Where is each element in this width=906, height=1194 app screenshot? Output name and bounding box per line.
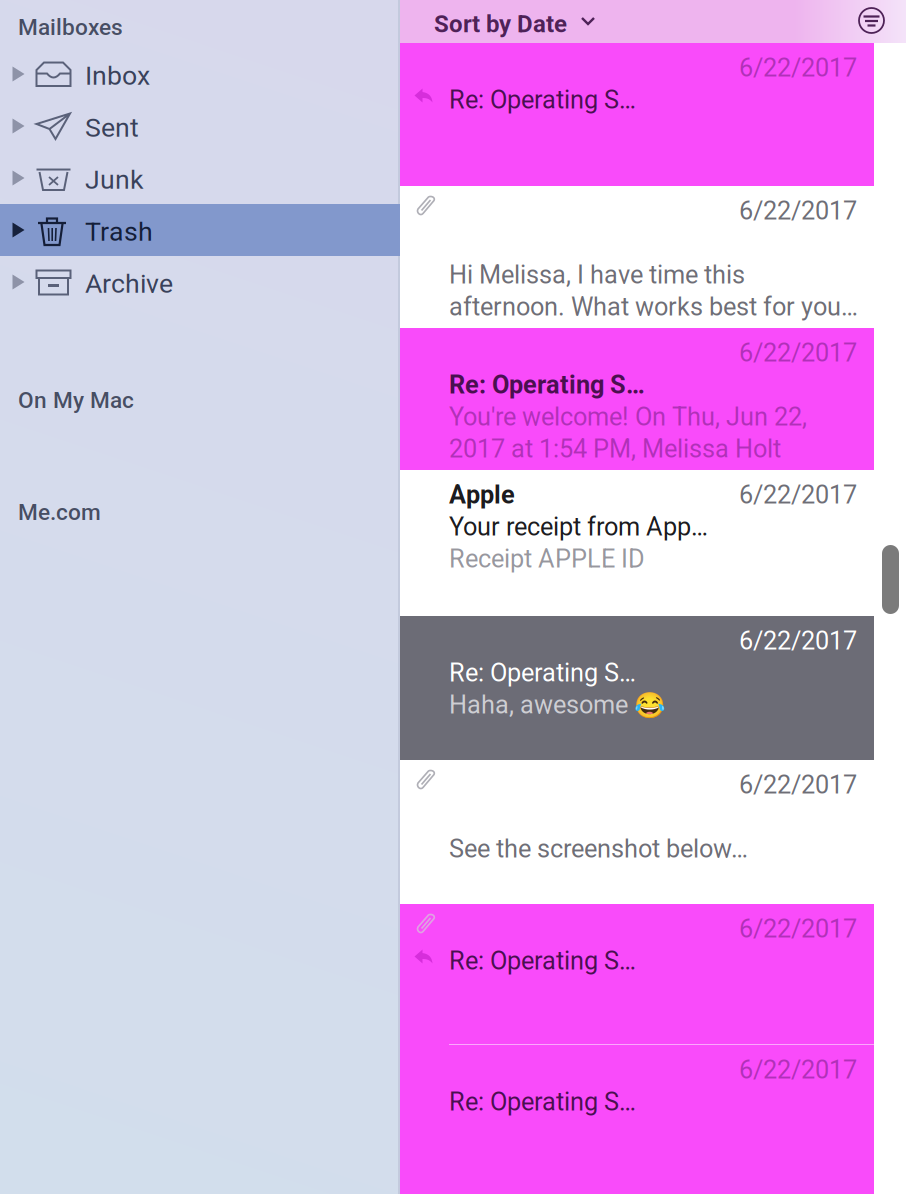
staticText: 6/22/2017 (739, 53, 857, 83)
staticText: Re: Operating S… (449, 370, 645, 400)
button[interactable]: Sort by Date (400, 0, 906, 43)
staticText: 6/22/2017 (739, 914, 857, 944)
button[interactable]: 6/22/2017 (400, 43, 874, 186)
staticText: 6/22/2017 (739, 626, 857, 656)
staticText: afternoon. What works best for you… (449, 292, 858, 322)
button[interactable]: 6/22/2017 (400, 470, 874, 616)
staticText: 6/22/2017 (739, 480, 857, 510)
button[interactable]: Archive (0, 256, 400, 308)
staticText: Sent (85, 112, 139, 143)
button[interactable]: Trash (0, 204, 400, 256)
button[interactable]: 6/22/2017 (400, 616, 874, 760)
staticText: Me.com (18, 499, 101, 526)
staticText: 2017 at 1:54 PM, Melissa Holt (449, 434, 781, 464)
button[interactable]: Inbox (0, 48, 400, 100)
button[interactable]: 6/22/2017 (400, 1045, 874, 1194)
button[interactable]: 6/22/2017 (400, 186, 874, 328)
button[interactable]: Junk (0, 152, 400, 204)
button[interactable]: 6/22/2017 (400, 904, 874, 1045)
staticText: Trash (85, 216, 153, 247)
staticText: Re: Operating S… (449, 85, 636, 115)
staticText: Re: Operating S… (449, 658, 636, 688)
staticText: Archive (85, 268, 173, 299)
staticText: 6/22/2017 (739, 1055, 857, 1085)
staticText: Re: Operating S… (449, 1087, 636, 1117)
staticText: Apple (449, 480, 515, 510)
staticText: Junk (85, 164, 144, 195)
staticText: Your receipt from App… (449, 512, 708, 542)
staticText: 6/22/2017 (739, 338, 857, 368)
button[interactable]: Sent (0, 100, 400, 152)
staticText: Mailboxes (18, 14, 123, 41)
staticText: Receipt APPLE ID (449, 544, 645, 574)
staticText: Sort by Date (434, 10, 567, 38)
staticText: 6/22/2017 (739, 196, 857, 226)
staticText: On My Mac (18, 387, 134, 414)
button[interactable]: 6/22/2017 (400, 328, 874, 470)
staticText: Hi Melissa, I have time this (449, 260, 745, 290)
staticText: Re: Operating S… (449, 946, 636, 976)
button[interactable]: 6/22/2017 (400, 760, 874, 904)
staticText: 6/22/2017 (739, 770, 857, 800)
staticText: Haha, awesome 😂 (449, 690, 666, 720)
staticText: You're welcome! On Thu, Jun 22, (449, 402, 807, 432)
staticText: Inbox (85, 60, 150, 91)
staticText: See the screenshot below… (449, 834, 748, 864)
